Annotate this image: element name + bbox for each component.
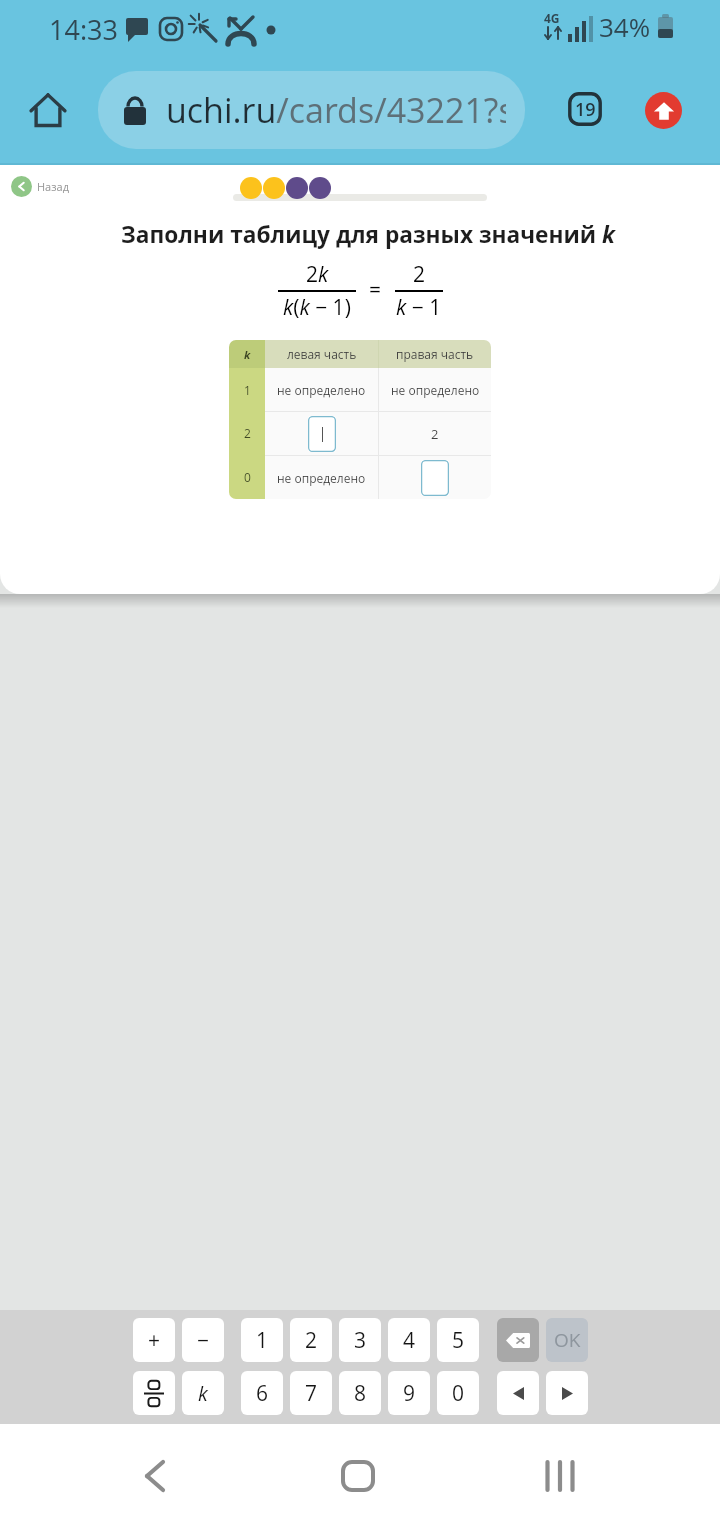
staticText: 2 [305, 1326, 318, 1355]
staticText: 2k [306, 260, 329, 289]
staticText: OK [554, 1327, 581, 1353]
button[interactable]: Answer field [308, 416, 336, 452]
staticText: 0 [452, 1379, 465, 1408]
staticText: k [244, 347, 251, 362]
staticText: 1 [256, 1326, 269, 1355]
button[interactable]: Move right [546, 1371, 588, 1415]
staticText: 6 [256, 1379, 269, 1408]
staticText: 2 [244, 425, 251, 441]
staticText: 9 [403, 1379, 416, 1408]
staticText: не определено [277, 382, 366, 398]
staticText: − [197, 1326, 210, 1355]
button[interactable]: 6 [241, 1371, 283, 1415]
button[interactable]: Home [18, 80, 78, 140]
button[interactable]: OK [546, 1318, 588, 1362]
staticText: 4G [544, 10, 560, 26]
staticText: 5 [452, 1326, 465, 1355]
button[interactable]: Tabs [563, 87, 607, 131]
button[interactable]: 0 [437, 1371, 479, 1415]
button[interactable]: k [182, 1371, 224, 1415]
staticText: 7 [305, 1379, 318, 1408]
staticText: 4 [403, 1326, 416, 1355]
staticText: 3 [354, 1326, 367, 1355]
button[interactable]: Home [318, 1436, 398, 1516]
staticText: Заполни таблицу для разных значений k [121, 219, 615, 250]
staticText: 2 [413, 260, 426, 289]
button[interactable]: + [133, 1318, 175, 1362]
staticText: 0 [244, 469, 251, 485]
button[interactable]: Move left [497, 1371, 539, 1415]
staticText: k [198, 1380, 208, 1407]
button[interactable]: Fraction [133, 1371, 175, 1415]
button[interactable]: 5 [437, 1318, 479, 1362]
staticText: левая часть [287, 346, 357, 362]
staticText: 1 [244, 382, 251, 398]
button[interactable]: Upload [645, 92, 682, 129]
button[interactable]: 1 [241, 1318, 283, 1362]
staticText: не определено [277, 470, 366, 486]
button[interactable]: uchi.ru/cards/43221?s [98, 71, 525, 149]
staticText: 8 [354, 1379, 367, 1408]
button[interactable]: 3 [339, 1318, 381, 1362]
button[interactable]: − [182, 1318, 224, 1362]
button[interactable]: Answer field [421, 460, 449, 496]
staticText: uchi.ru/cards/43221?s [166, 87, 506, 133]
staticText: Назад [37, 179, 69, 194]
staticText: + [148, 1326, 161, 1355]
staticText: = [369, 275, 382, 304]
button[interactable]: 7 [290, 1371, 332, 1415]
button[interactable]: Recent apps [520, 1436, 600, 1516]
button[interactable]: Назад [11, 173, 69, 199]
button[interactable]: Backspace [497, 1318, 539, 1362]
staticText: 2 [431, 425, 439, 443]
button[interactable]: 4 [388, 1318, 430, 1362]
staticText: 14:33 [49, 11, 118, 48]
staticText: k − 1 [396, 293, 442, 322]
staticText: правая часть [396, 346, 474, 362]
staticText: не определено [391, 382, 480, 398]
button[interactable]: 2 [290, 1318, 332, 1362]
button[interactable]: Back [115, 1436, 195, 1516]
staticText: k(k − 1) [283, 293, 351, 322]
button[interactable]: 9 [388, 1371, 430, 1415]
button[interactable]: 8 [339, 1371, 381, 1415]
staticText: 19 [575, 97, 596, 122]
staticText: 34% [599, 9, 651, 44]
